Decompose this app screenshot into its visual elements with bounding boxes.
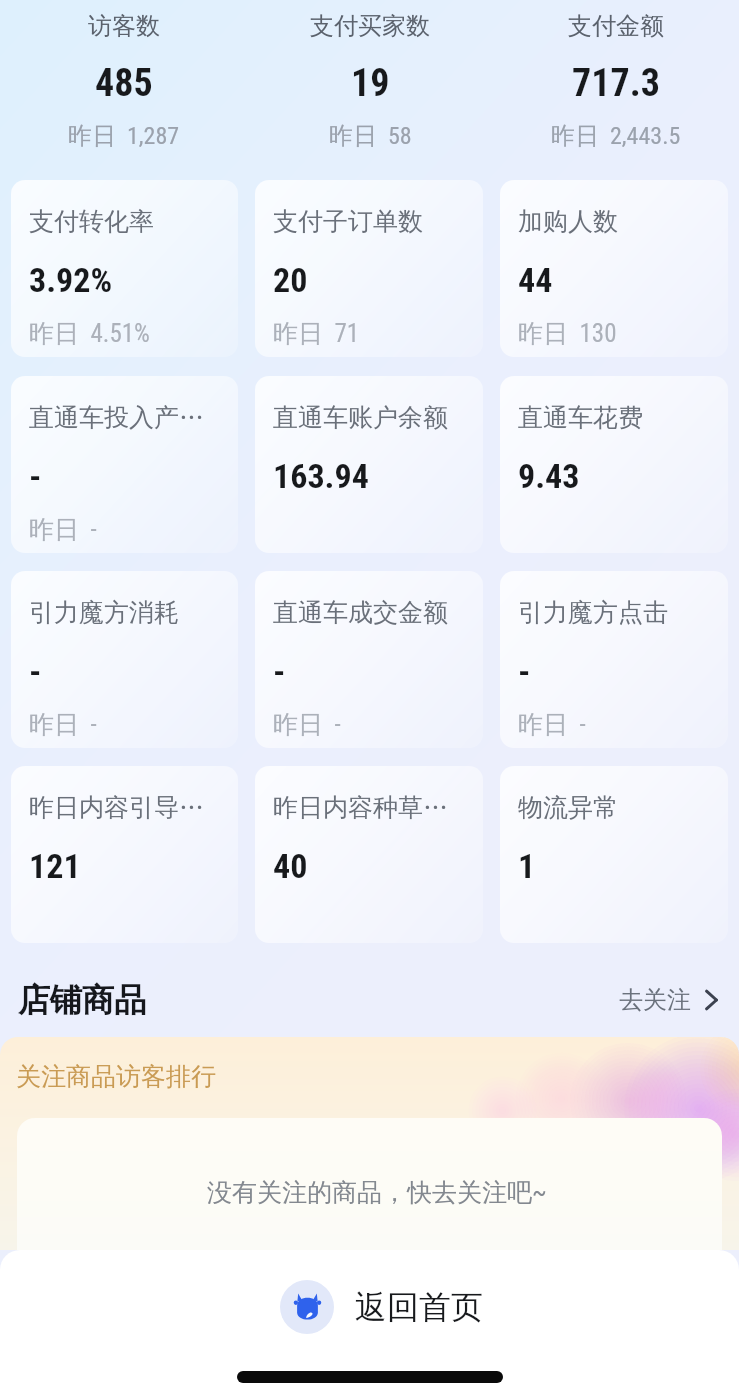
button[interactable]: 引力魔方点击 xyxy=(500,571,728,748)
staticText: 支付子订单数 xyxy=(273,206,423,237)
button[interactable]: 直通车投入产出比 xyxy=(11,376,238,553)
staticText: 昨日 71 xyxy=(273,318,360,349)
staticText: 支付买家数 xyxy=(310,11,430,41)
staticText: 昨日 - xyxy=(518,709,586,740)
staticText: 直通车花费 xyxy=(518,402,643,433)
staticText: 昨日 - xyxy=(29,709,97,740)
staticText: 引力魔方点击 xyxy=(518,597,668,628)
staticText: 直通车账户余额 xyxy=(273,402,448,433)
button[interactable]: 昨日内容种草人数 xyxy=(255,766,483,943)
button[interactable]: 引力魔方消耗 xyxy=(11,571,238,748)
staticText: 3.92% xyxy=(29,260,113,300)
staticText: 717.3 xyxy=(572,61,660,106)
staticText: 直通车成交金额 xyxy=(273,597,448,628)
staticText: 1 xyxy=(518,846,536,886)
staticText: 9.43 xyxy=(518,456,580,496)
staticText: 昨日 - xyxy=(29,514,97,545)
staticText: 直通车投入产出比 xyxy=(29,402,206,433)
staticText: 加购人数 xyxy=(518,206,618,237)
staticText: 支付金额 xyxy=(568,11,664,41)
staticText: 引力魔方消耗 xyxy=(29,597,179,628)
staticText: 返回首页 xyxy=(355,1287,483,1327)
staticText: 昨日 2,443.5 xyxy=(551,121,681,151)
staticText: 店铺商品 xyxy=(18,980,146,1020)
button[interactable]: 直通车花费 xyxy=(500,376,728,553)
staticText: 40 xyxy=(273,846,308,886)
staticText: 20 xyxy=(273,260,308,300)
staticText: - xyxy=(29,651,42,691)
button[interactable]: 去关注 xyxy=(609,979,739,1021)
staticText: 没有关注的商品，快去关注吧~ xyxy=(207,1177,547,1208)
staticText: 支付转化率 xyxy=(29,206,154,237)
staticText: - xyxy=(29,456,42,496)
button[interactable]: 支付转化率 xyxy=(11,180,238,357)
staticText: 昨日内容引导支付金额 xyxy=(29,792,206,823)
staticText: 昨日 - xyxy=(273,709,341,740)
button[interactable]: 直通车成交金额 xyxy=(255,571,483,748)
staticText: 物流异常 xyxy=(518,792,618,823)
staticText: 163.94 xyxy=(273,456,369,496)
button[interactable]: 访客数 xyxy=(0,11,247,151)
staticText: - xyxy=(518,651,531,691)
staticText: 访客数 xyxy=(88,11,160,41)
button[interactable]: 物流异常 xyxy=(500,766,728,943)
button[interactable]: 支付买家数 xyxy=(247,11,493,151)
staticText: 昨日 130 xyxy=(518,318,617,349)
staticText: 去关注 xyxy=(619,985,691,1015)
button[interactable]: 昨日内容引导支付金额 xyxy=(11,766,238,943)
staticText: 关注商品访客排行 xyxy=(16,1061,216,1092)
staticText: 昨日 58 xyxy=(329,121,412,151)
button[interactable]: 返回首页 xyxy=(280,1280,483,1334)
staticText: 485 xyxy=(95,61,153,106)
button[interactable]: 支付金额 xyxy=(493,11,739,151)
staticText: 44 xyxy=(518,260,553,300)
button[interactable]: 支付子订单数 xyxy=(255,180,483,357)
staticText: 19 xyxy=(351,61,390,106)
staticText: 昨日 1,287 xyxy=(68,121,180,151)
staticText: 昨日 4.51% xyxy=(29,318,150,349)
staticText: 昨日内容种草人数 xyxy=(273,792,451,823)
staticText: 121 xyxy=(29,846,81,886)
button[interactable]: 加购人数 xyxy=(500,180,728,357)
button[interactable]: 直通车账户余额 xyxy=(255,376,483,553)
staticText: - xyxy=(273,651,286,691)
